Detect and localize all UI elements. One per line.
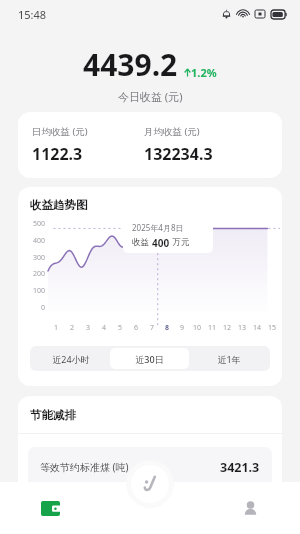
staticText: 今日收益 (元) <box>118 89 183 104</box>
staticText: 月均收益 (元) <box>144 125 200 138</box>
staticText: 132234.3 <box>144 143 213 165</box>
staticText: 15:48 <box>18 7 47 22</box>
staticText: 1122.3 <box>32 143 83 165</box>
button[interactable]: 等效节约标准煤 (吨) <box>28 447 272 487</box>
staticText: 万元 <box>170 236 190 248</box>
staticText: 近24小时 <box>52 353 90 365</box>
button[interactable]: 近24小时 <box>32 348 110 369</box>
staticText: 9 <box>180 323 185 333</box>
button[interactable]: 近1年 <box>189 348 268 369</box>
staticText: 3 <box>86 323 91 333</box>
staticText: 300 <box>33 253 46 263</box>
staticText: 近1年 <box>217 353 241 365</box>
button[interactable]: Profile <box>200 482 300 534</box>
staticText: 近30日 <box>135 353 164 365</box>
staticText: 7 <box>150 323 155 333</box>
staticText: 3421.3 <box>220 459 260 476</box>
staticText: 等效节约标准煤 (吨) <box>40 460 129 474</box>
staticText: 11 <box>208 323 217 333</box>
button[interactable]: 日均收益 (元) <box>18 112 282 178</box>
staticText: 4439.2 <box>83 44 178 85</box>
button[interactable]: Wallet <box>0 482 100 534</box>
staticText: 日均收益 (元) <box>32 125 88 138</box>
staticText: 1.2% <box>191 65 217 80</box>
staticText: 10 <box>193 323 202 333</box>
staticText: 收益 <box>132 236 152 248</box>
staticText: 6 <box>134 323 139 333</box>
staticText: 4 <box>102 323 107 333</box>
staticText: 收益趋势图 <box>30 198 88 212</box>
staticText: 13 <box>238 323 247 333</box>
staticText: 1 <box>54 323 59 333</box>
staticText: 14 <box>253 323 262 333</box>
staticText: 节能减排 <box>30 408 76 422</box>
staticText: 5 <box>118 323 123 333</box>
staticText: 2 <box>70 323 75 333</box>
staticText: 12 <box>223 323 232 333</box>
staticText: 200 <box>33 269 46 279</box>
staticText: 0 <box>41 303 46 313</box>
staticText: 400 <box>152 236 170 248</box>
staticText: 400 <box>33 236 46 246</box>
staticText: 2025年4月8日 <box>132 222 184 233</box>
button[interactable]: Home <box>126 460 174 508</box>
staticText: 100 <box>33 286 46 296</box>
staticText: 8 <box>165 323 170 333</box>
button[interactable]: 近30日 <box>110 348 189 369</box>
staticText: 15 <box>268 323 277 333</box>
staticText: 500 <box>33 219 46 229</box>
